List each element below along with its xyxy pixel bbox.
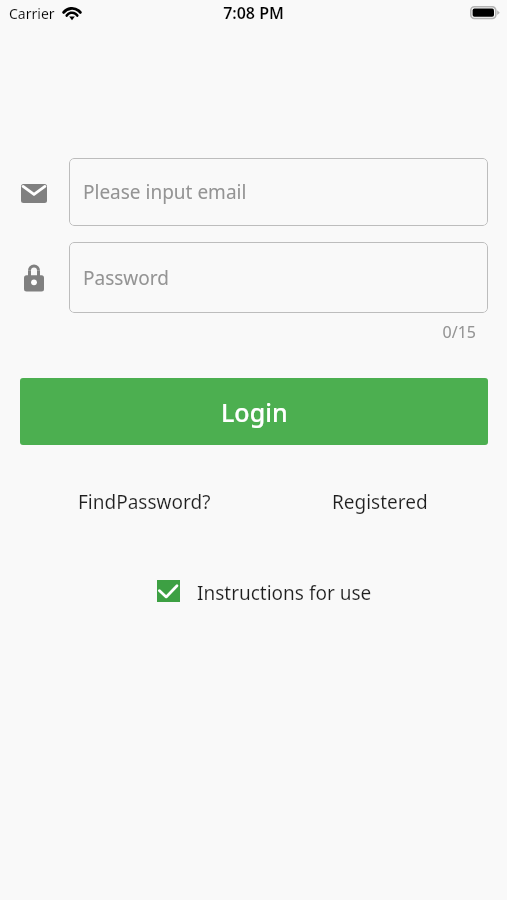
staticText: 0/15	[0, 321, 476, 343]
other: Password	[24, 264, 44, 292]
button[interactable]: Instructions for use	[157, 580, 372, 606]
staticText: Instructions for use	[197, 580, 372, 606]
button[interactable]: Login	[20, 378, 488, 445]
button[interactable]: FindPassword?	[78, 489, 211, 515]
staticText: Registered	[332, 489, 428, 515]
button[interactable]: Registered	[332, 489, 428, 515]
staticText: Please input email	[83, 179, 247, 205]
staticText: Password	[83, 265, 169, 291]
other: Email	[21, 184, 47, 203]
staticText: 7:08 PM	[0, 2, 507, 24]
button[interactable]: Password	[69, 242, 488, 313]
staticText: Carrier	[9, 4, 55, 23]
staticText: Login	[221, 395, 288, 429]
other: Wi-Fi signal	[62, 0, 82, 19]
button[interactable]: Please input email	[69, 158, 488, 226]
other: Battery full	[470, 6, 501, 20]
staticText: FindPassword?	[78, 489, 211, 515]
